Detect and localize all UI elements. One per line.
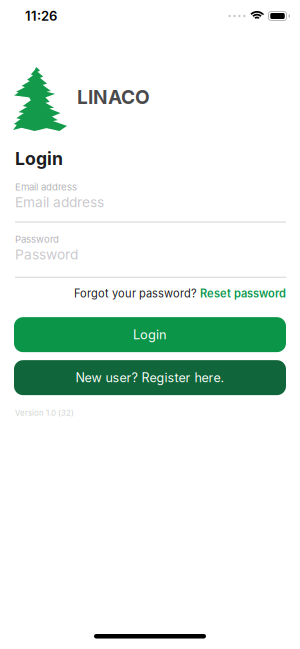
button[interactable]: Email address [15,193,286,222]
staticText: Reset password [200,287,286,300]
staticText: Forgot your password? [74,287,197,300]
staticText: Version 1.0 (32) [15,408,74,418]
button[interactable]: Reset password [200,287,286,300]
staticText: New user? Register here. [75,370,224,385]
button[interactable]: Login [14,317,286,352]
staticText: LINACO [77,85,150,109]
staticText: Login [15,148,63,169]
staticText: Password [15,233,59,245]
button[interactable]: Password [15,245,286,278]
staticText: Email address [15,194,104,210]
staticText: Password [15,246,78,263]
staticText: Email address [15,181,77,193]
staticText: 11:26 [25,8,57,24]
button[interactable]: New user? Register here. [14,360,286,395]
staticText: Login [133,327,167,342]
